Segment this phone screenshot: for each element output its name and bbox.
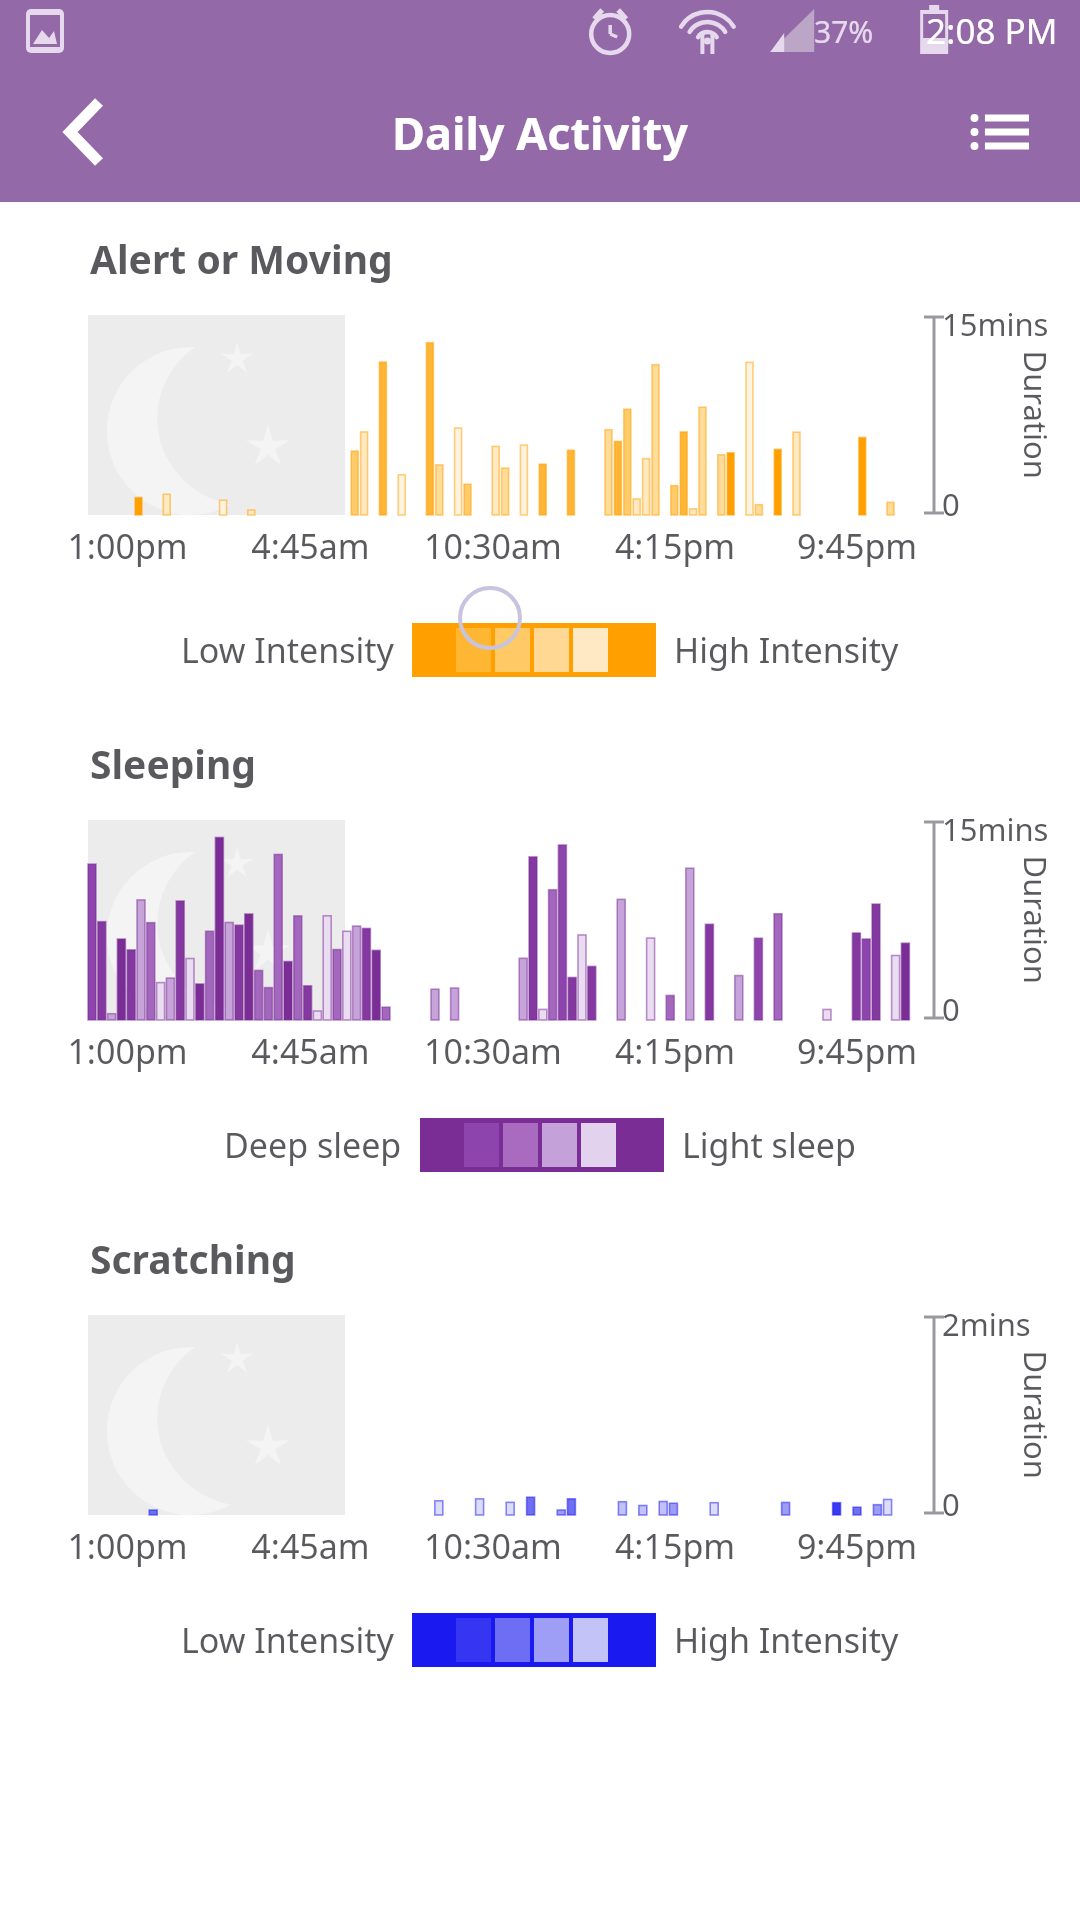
staticText: 9:45pm	[766, 1028, 948, 1074]
staticText: 15mins	[942, 808, 1049, 850]
staticText: Daily Activity	[392, 102, 688, 163]
staticText: 2:08 PM	[926, 7, 1058, 55]
staticText: 0	[942, 483, 960, 525]
button[interactable]	[412, 1613, 656, 1667]
staticText: 4:15pm	[584, 523, 766, 569]
staticText: 2mins	[942, 1303, 1031, 1345]
staticText: Duration	[1014, 1350, 1056, 1479]
staticText: High Intensity	[674, 627, 899, 673]
staticText: 0	[942, 1483, 960, 1525]
staticText: 15mins	[942, 303, 1049, 345]
staticText: 10:30am	[402, 1523, 584, 1569]
staticText: Scratching	[90, 1232, 296, 1285]
staticText: 4:15pm	[584, 1523, 766, 1569]
staticText: 4:45am	[219, 1028, 402, 1074]
staticText: 10:30am	[402, 523, 584, 569]
staticText: 4:15pm	[584, 1028, 766, 1074]
staticText: Low Intensity	[181, 1617, 394, 1663]
staticText: 0	[942, 988, 960, 1030]
staticText: Low Intensity	[181, 627, 394, 673]
staticText: Sleeping	[90, 737, 256, 790]
staticText: 37%	[814, 11, 874, 52]
button[interactable]	[420, 1118, 664, 1172]
staticText: 1:00pm	[36, 523, 219, 569]
staticText: Duration	[1014, 350, 1056, 479]
staticText: 4:45am	[219, 523, 402, 569]
staticText: Deep sleep	[224, 1122, 402, 1168]
button[interactable]: Intensity selector	[457, 585, 523, 651]
staticText: 1:00pm	[36, 1028, 219, 1074]
button[interactable]: Back	[44, 92, 124, 172]
button[interactable]	[412, 623, 656, 677]
staticText: 4:45am	[219, 1523, 402, 1569]
staticText: 9:45pm	[766, 1523, 948, 1569]
staticText: 10:30am	[402, 1028, 584, 1074]
staticText: 1:00pm	[36, 1523, 219, 1569]
staticText: Alert or Moving	[90, 232, 393, 285]
staticText: Duration	[1014, 855, 1056, 984]
staticText: Light sleep	[682, 1122, 856, 1168]
staticText: 9:45pm	[766, 523, 948, 569]
button[interactable]: Menu	[960, 92, 1040, 172]
staticText: High Intensity	[674, 1617, 899, 1663]
